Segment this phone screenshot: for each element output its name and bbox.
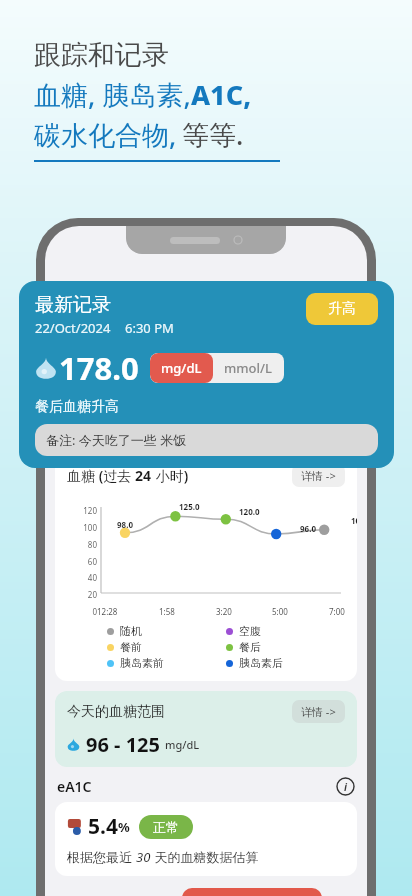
button[interactable]: 备注: 今天吃了一些 米饭 <box>35 424 378 456</box>
staticText: 餐后 <box>239 640 261 654</box>
staticText: 80 <box>67 539 97 550</box>
staticText: 3:20 <box>216 606 232 617</box>
staticText: 空腹 <box>239 624 261 638</box>
staticText: % <box>118 818 130 836</box>
staticText: 餐后血糖升高 <box>35 398 119 416</box>
staticText: 详情 -> <box>301 704 336 719</box>
staticText: 96 - 125 <box>86 731 160 758</box>
staticText: 96.0 <box>300 523 316 534</box>
staticText: 20 <box>67 589 97 600</box>
button[interactable]: 升高 <box>306 293 378 325</box>
staticText: 等等. <box>182 116 244 153</box>
staticText: 胰岛素前 <box>120 656 164 670</box>
staticText: 碳水化合物, <box>34 116 177 153</box>
staticText: eA1C <box>57 777 336 796</box>
staticText: 98.0 <box>117 519 133 530</box>
staticText: 5:00 <box>272 606 288 617</box>
staticText: 备注: 今天吃了一些 米饭 <box>46 431 187 449</box>
button[interactable]: 5.4 <box>55 802 357 876</box>
staticText: 天的血糖数据估算 <box>151 848 259 866</box>
staticText: i <box>344 780 347 794</box>
button[interactable]: Add record <box>182 888 322 896</box>
staticText: 7:00 <box>329 606 345 617</box>
staticText: 0 <box>67 606 97 617</box>
staticText: 小时) <box>152 466 189 485</box>
button[interactable]: 详情 -> <box>292 700 345 723</box>
staticText: 今天的血糖范围 <box>67 703 292 721</box>
staticText: 根据您最近 <box>67 848 136 866</box>
button[interactable]: 血糖 (过去 <box>55 454 357 681</box>
staticText: 22/Oct/2024 <box>35 319 111 337</box>
staticText: mg/dL <box>165 737 200 752</box>
staticText: 正常 <box>153 819 179 835</box>
button[interactable]: mg/dL <box>150 353 213 383</box>
staticText: mmol/L <box>224 359 273 377</box>
staticText: 120.0 <box>239 506 260 517</box>
staticText: 餐前 <box>120 640 142 654</box>
staticText: 5.4 <box>88 812 118 841</box>
staticText: 40 <box>67 572 97 583</box>
staticText: mg/dL <box>161 359 202 377</box>
staticText: 随机 <box>120 624 142 638</box>
button[interactable]: 详情 -> <box>292 464 345 487</box>
staticText: 103.0 <box>351 515 357 526</box>
staticText: 1:58 <box>159 606 175 617</box>
button[interactable]: 今天的血糖范围 <box>55 691 357 767</box>
staticText: 178.0 <box>59 347 139 389</box>
staticText: 60 <box>67 556 97 567</box>
staticText: 125.0 <box>179 501 200 512</box>
staticText: 最新记录 <box>35 293 111 317</box>
staticText: 血糖 (过去 <box>67 466 135 485</box>
staticText: 30 <box>136 848 151 866</box>
staticText: 跟踪和记录 <box>34 38 169 72</box>
staticText: 血糖, 胰岛素, <box>34 76 191 113</box>
staticText: 120 <box>67 505 97 516</box>
staticText: 升高 <box>328 300 356 318</box>
staticText: 详情 -> <box>301 468 336 483</box>
button[interactable]: 最新记录 <box>19 281 394 468</box>
button[interactable]: mmol/L <box>213 353 284 383</box>
staticText: 胰岛素后 <box>239 656 283 670</box>
button[interactable]: Info <box>336 777 355 796</box>
staticText: 24 <box>135 466 152 485</box>
staticText: 100 <box>67 522 97 533</box>
staticText: 12:28 <box>97 606 118 617</box>
staticText: 6:30 PM <box>125 319 174 337</box>
staticText: A1C, <box>191 76 252 113</box>
